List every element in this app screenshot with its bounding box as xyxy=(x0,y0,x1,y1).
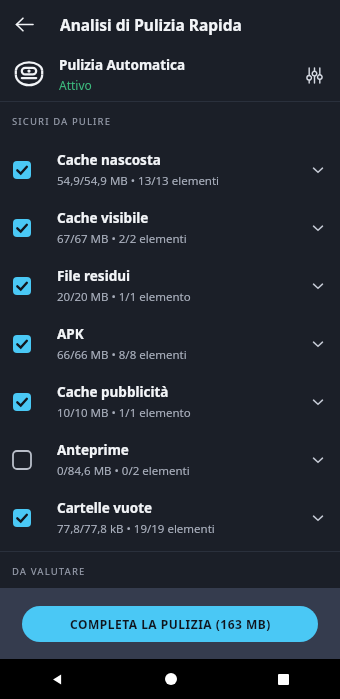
button[interactable]: Checked xyxy=(13,393,31,411)
button[interactable]: Checked xyxy=(0,315,340,373)
staticText: File residui xyxy=(57,267,131,285)
button[interactable]: Expand xyxy=(298,498,338,538)
staticText: Cartelle vuote xyxy=(57,499,153,517)
staticText: Pulizia Automatica xyxy=(59,56,186,74)
button[interactable]: Expand xyxy=(298,266,338,306)
staticText: Cache pubblicità xyxy=(57,383,169,401)
button[interactable]: Checked xyxy=(13,335,31,353)
button[interactable]: Checked xyxy=(0,373,340,431)
button[interactable]: Expand xyxy=(298,150,338,190)
button[interactable]: Checked xyxy=(0,257,340,315)
staticText: 66/66 MB • 8/8 elementi xyxy=(57,347,187,363)
staticText: 67/67 MB • 2/2 elementi xyxy=(57,231,187,247)
button[interactable]: Checked xyxy=(13,277,31,295)
button[interactable]: Checked xyxy=(13,219,31,237)
button[interactable]: Checked xyxy=(0,199,340,257)
button[interactable]: Expand xyxy=(298,324,338,364)
staticText: Cache nascosta xyxy=(57,151,161,169)
button[interactable]: Unchecked xyxy=(13,451,31,469)
staticText: APK xyxy=(57,325,84,343)
staticText: DA VALUTARE xyxy=(12,565,86,578)
button[interactable]: Checked xyxy=(13,509,31,527)
button[interactable]: Checked xyxy=(13,161,31,179)
staticText: SICURI DA PULIRE xyxy=(12,115,112,128)
staticText: 77,8/77,8 kB • 19/19 elementi xyxy=(57,521,215,537)
button[interactable]: Back xyxy=(0,659,114,699)
button[interactable]: Unchecked xyxy=(0,431,340,489)
button[interactable]: Home xyxy=(114,659,227,699)
button[interactable]: Checked xyxy=(0,489,340,547)
button[interactable]: Expand xyxy=(298,382,338,422)
staticText: 54,9/54,9 MB • 13/13 elementi xyxy=(57,173,220,189)
staticText: Anteprime xyxy=(57,441,129,459)
button[interactable]: Pulizia Automatica xyxy=(0,48,340,101)
staticText: COMPLETA LA PULIZIA (163 MB) xyxy=(70,616,271,632)
button[interactable]: Recents xyxy=(227,659,340,699)
staticText: 20/20 MB • 1/1 elemento xyxy=(57,289,191,305)
button[interactable]: COMPLETA LA PULIZIA (163 MB) xyxy=(22,606,318,642)
staticText: Attivo xyxy=(59,77,92,93)
button[interactable]: Expand xyxy=(298,440,338,480)
staticText: Analisi di Pulizia Rapida xyxy=(60,14,242,35)
staticText: 10/10 MB • 1/1 elemento xyxy=(57,405,191,421)
staticText: 0/84,6 MB • 0/2 elementi xyxy=(57,463,190,479)
button[interactable]: Back xyxy=(0,0,48,48)
button[interactable]: Expand xyxy=(298,208,338,248)
button[interactable]: Settings xyxy=(292,53,336,97)
staticText: Cache visibile xyxy=(57,209,149,227)
button[interactable]: Checked xyxy=(0,141,340,199)
